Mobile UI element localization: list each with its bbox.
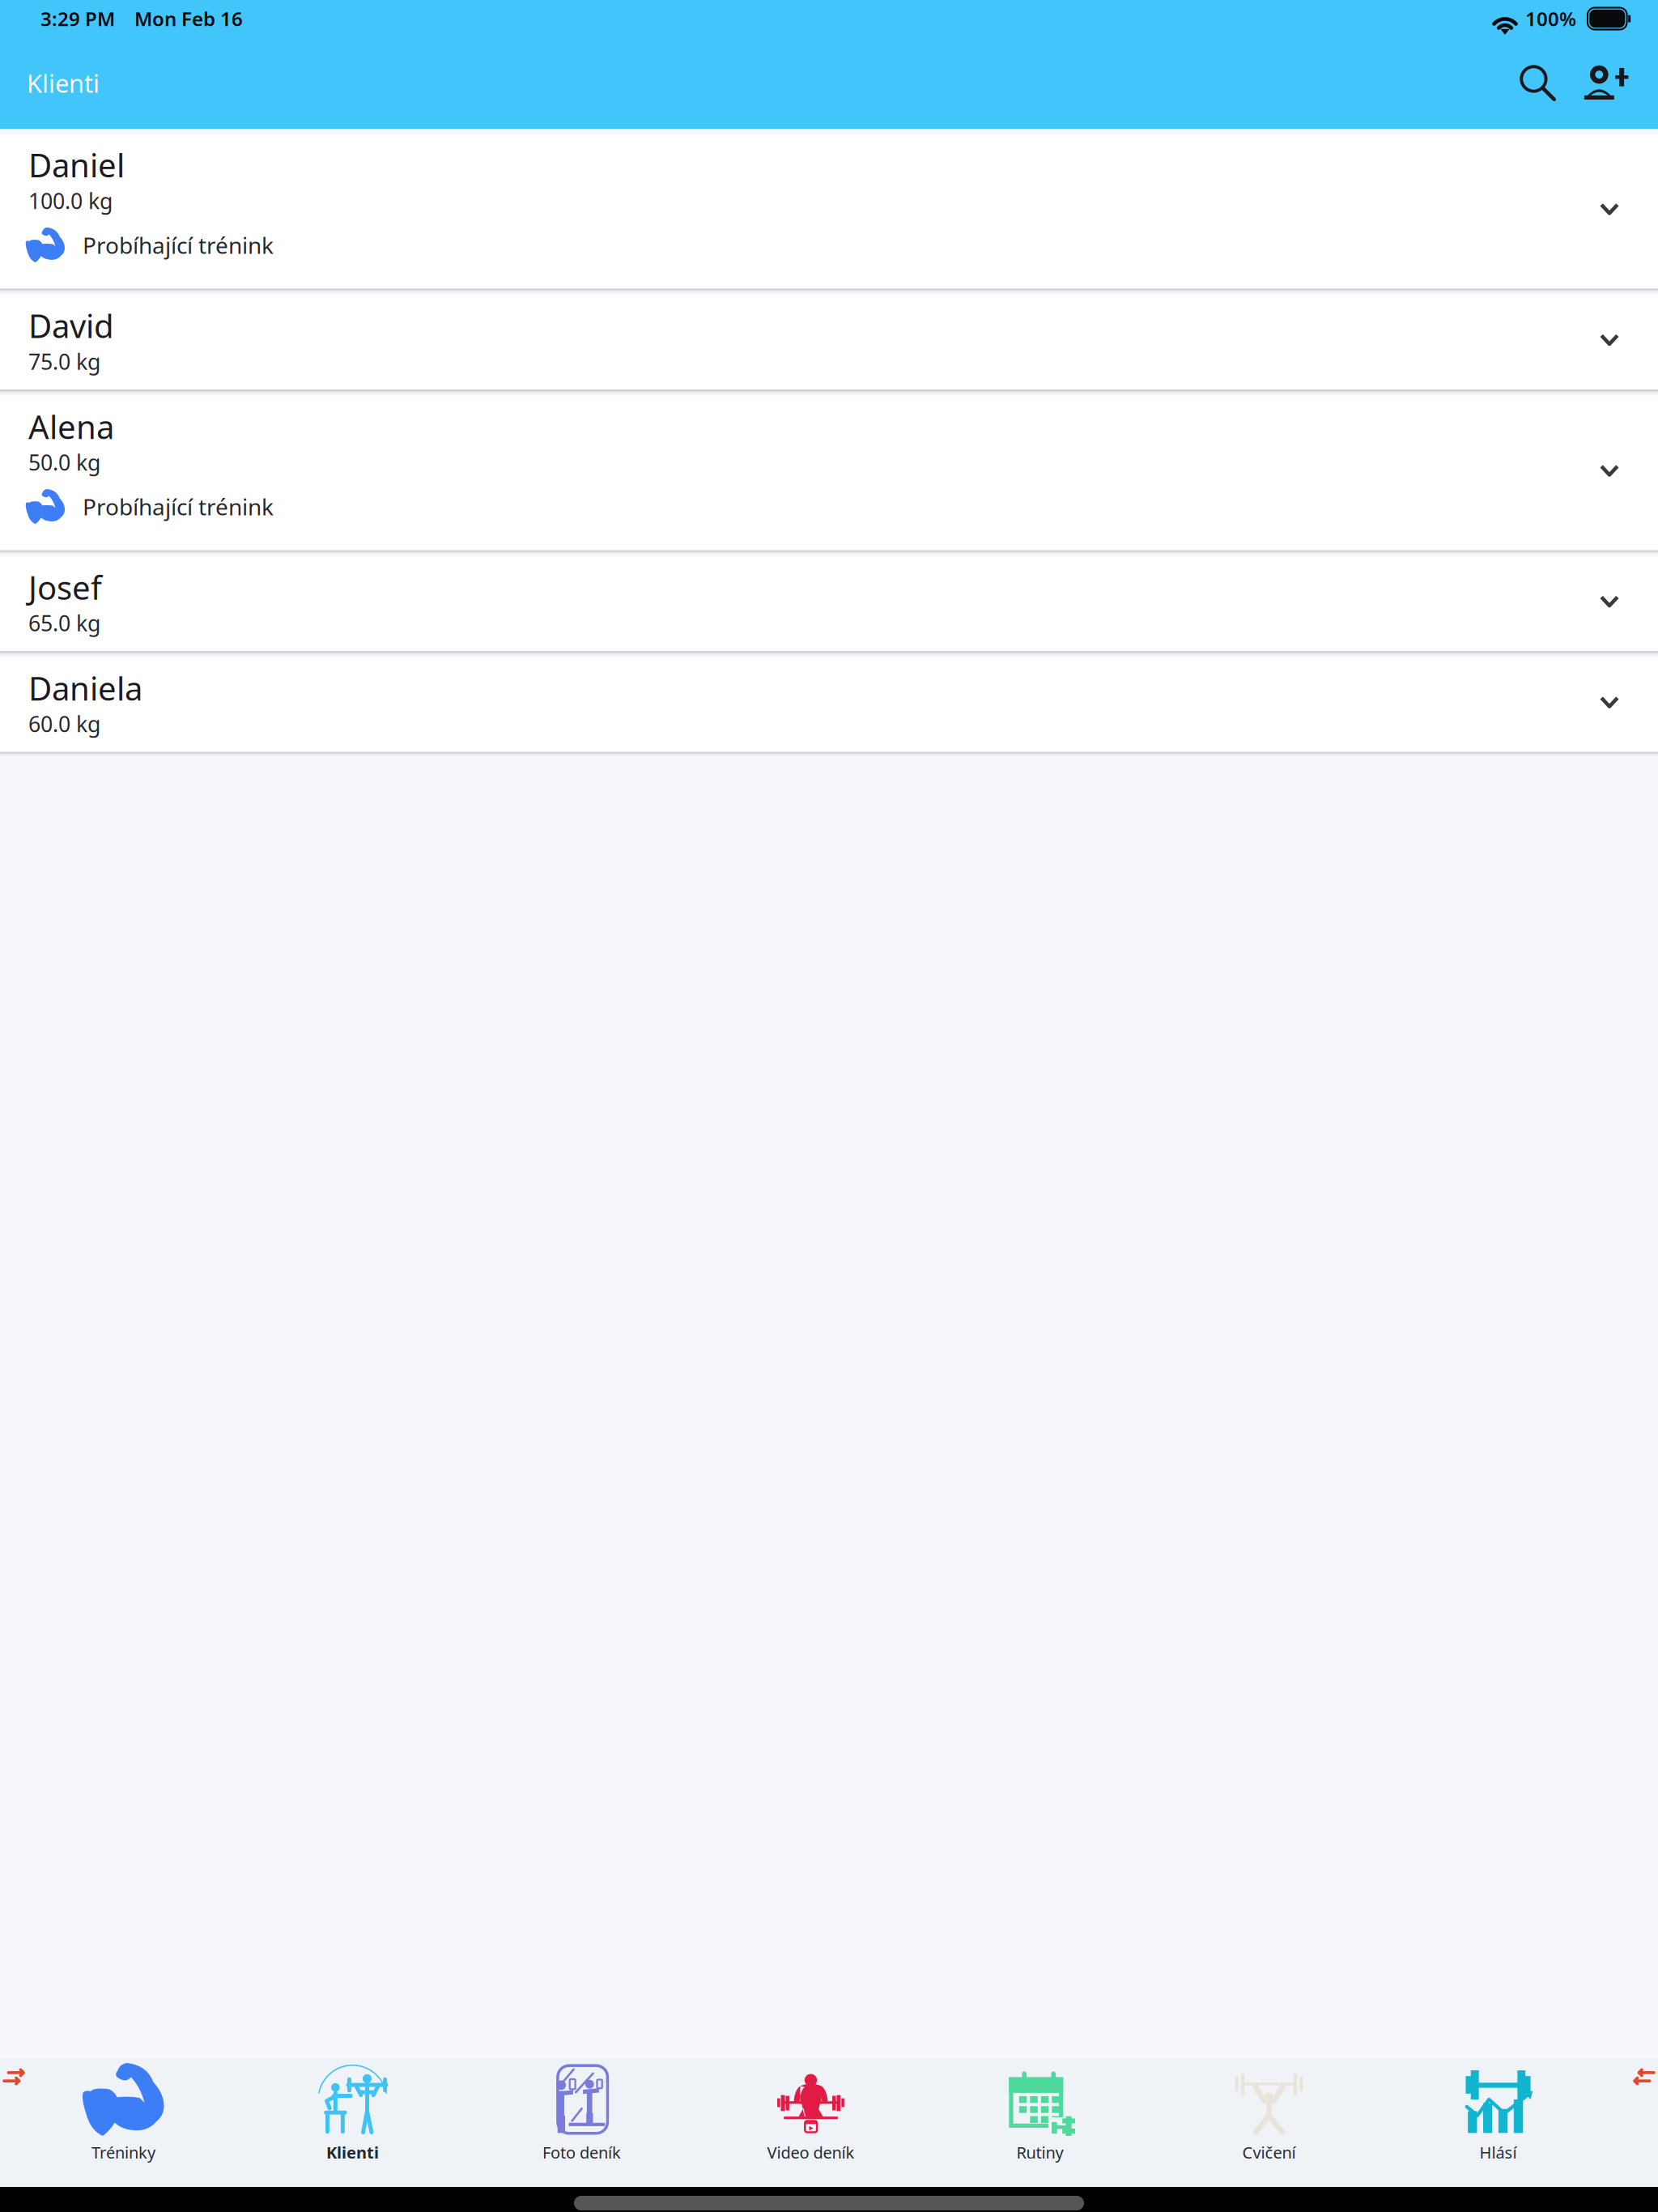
staticText: Rutiny <box>1016 2142 1063 2163</box>
button[interactable]: Tréninky <box>9 2058 238 2187</box>
staticText: David <box>28 304 114 347</box>
staticText: 100.0 kg <box>28 186 113 215</box>
staticText: Hlásí <box>1479 2142 1517 2163</box>
staticText: Probíhající trénink <box>83 230 274 260</box>
button[interactable]: Add client <box>1566 37 1647 129</box>
button[interactable]: Daniel <box>0 134 1658 289</box>
staticText: 100% <box>1525 6 1576 32</box>
staticText: 3:29 PM <box>40 6 115 32</box>
staticText: Josef <box>28 566 102 609</box>
staticText: Video deník <box>767 2142 855 2163</box>
staticText: Tréninky <box>91 2142 155 2163</box>
staticText: Cvičení <box>1242 2142 1296 2163</box>
staticText: Daniela <box>28 666 142 709</box>
staticText: Klienti <box>27 66 100 99</box>
button[interactable]: Klienti <box>238 2058 467 2187</box>
staticText: Daniel <box>28 143 125 186</box>
staticText: 50.0 kg <box>28 448 100 477</box>
staticText: 60.0 kg <box>28 709 100 738</box>
button[interactable]: Daniela <box>0 658 1658 752</box>
staticText: Probíhající trénink <box>83 491 274 522</box>
button[interactable]: Alena <box>0 396 1658 550</box>
button[interactable]: Video deník <box>696 2058 925 2187</box>
button[interactable]: Hlásí <box>1384 2058 1613 2187</box>
staticText: Klienti <box>326 2142 379 2163</box>
staticText: Foto deník <box>542 2142 621 2163</box>
staticText: Alena <box>28 405 114 448</box>
button[interactable]: Cvičení <box>1154 2058 1384 2187</box>
button[interactable]: Rutiny <box>925 2058 1154 2187</box>
staticText: Mon Feb 16 <box>134 6 243 32</box>
staticText: 75.0 kg <box>28 347 100 376</box>
button[interactable]: Foto deník <box>467 2058 696 2187</box>
staticText: 65.0 kg <box>28 609 100 637</box>
button[interactable]: Josef <box>0 557 1658 651</box>
button[interactable]: Search clients <box>1497 37 1578 129</box>
button[interactable]: David <box>0 295 1658 389</box>
